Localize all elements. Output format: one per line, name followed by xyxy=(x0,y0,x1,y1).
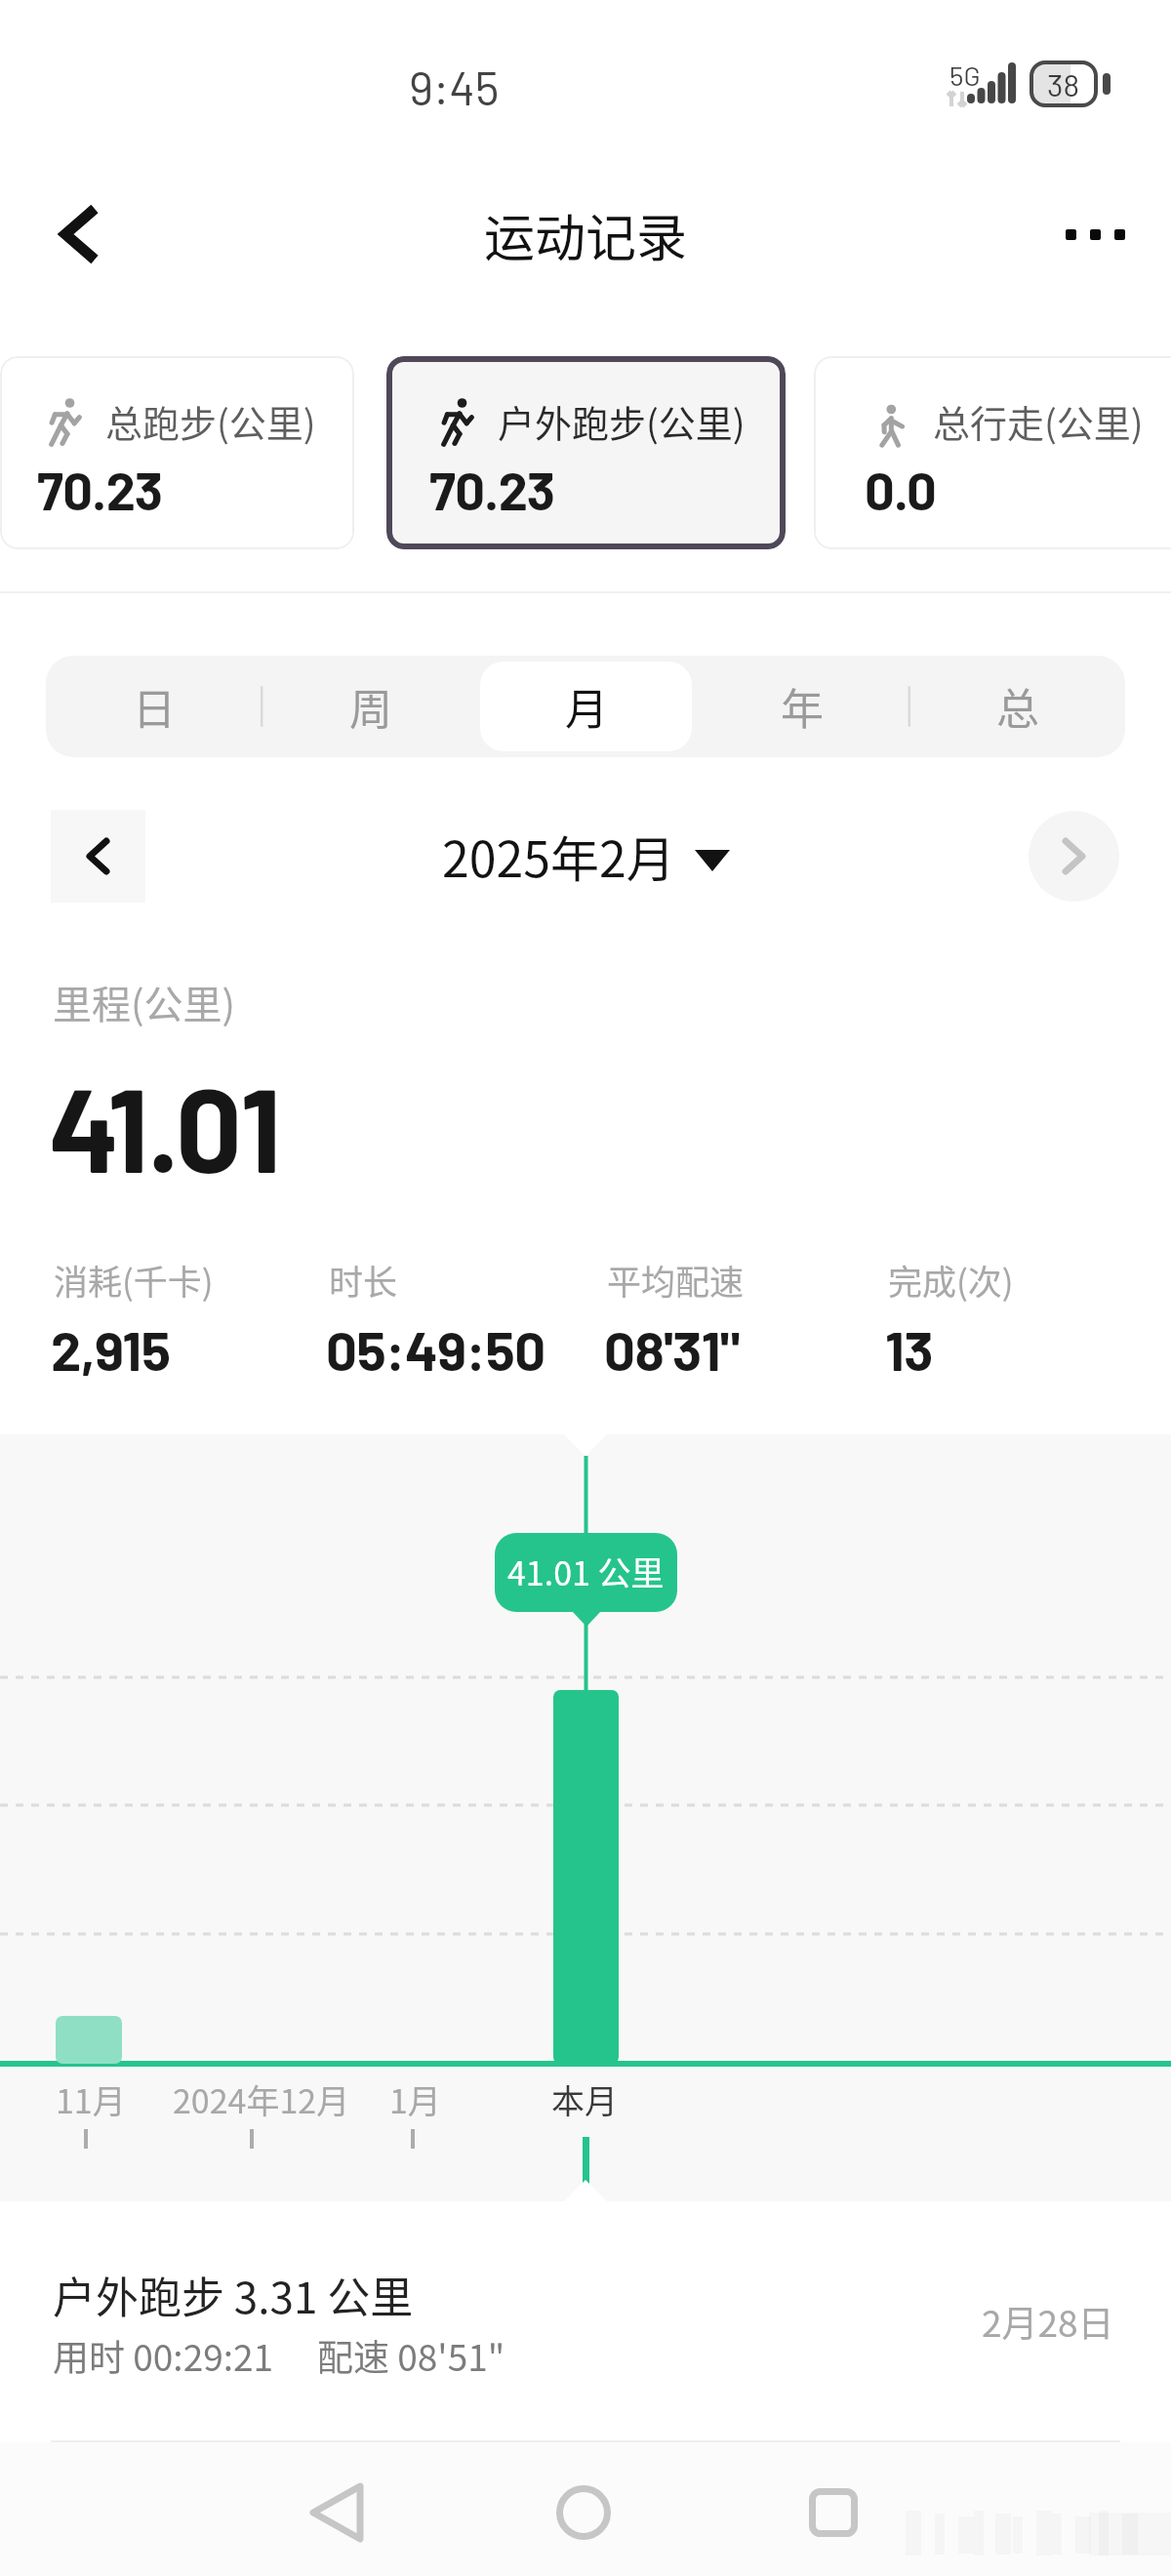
staticText: 2024年12月 xyxy=(173,2075,350,2123)
staticText: 配速 08'51" xyxy=(317,2329,505,2382)
button[interactable]: Previous month xyxy=(51,810,145,903)
staticText: 5G xyxy=(949,59,981,92)
staticText: 2025年2月 xyxy=(442,821,675,891)
staticText: 里程(公里) xyxy=(53,974,236,1030)
staticText: 平均配速 xyxy=(607,1255,745,1305)
button[interactable]: 总跑步(公里) xyxy=(0,356,354,549)
staticText: 总行走(公里) xyxy=(933,394,1144,448)
staticText: 户外跑步(公里) xyxy=(498,394,746,448)
staticText: 38 xyxy=(1047,65,1080,102)
staticText: 41.01 公里 xyxy=(507,1548,665,1595)
button[interactable]: Next month xyxy=(1029,811,1119,902)
staticText: 05:49:50 xyxy=(326,1316,545,1382)
button[interactable]: 月 xyxy=(480,662,692,751)
staticText: 户外跑步 3.31 公里 xyxy=(53,2264,414,2326)
staticText: 2,915 xyxy=(51,1316,171,1382)
staticText: 13 xyxy=(885,1316,934,1382)
button[interactable]: Back xyxy=(278,2454,395,2571)
staticText: 1月 xyxy=(389,2075,441,2123)
staticText: 0.0 xyxy=(865,458,937,521)
staticText: 70.23 xyxy=(429,458,555,521)
button[interactable]: 总行走(公里) xyxy=(814,356,1171,549)
staticText: 11月 xyxy=(56,2075,126,2123)
staticText: 消耗(千卡) xyxy=(54,1255,214,1305)
button[interactable]: 户外跑步(公里) xyxy=(386,356,786,549)
staticText: 2月28日 xyxy=(982,2295,1114,2348)
staticText: 70.23 xyxy=(37,458,163,521)
button[interactable]: More options xyxy=(1050,189,1140,279)
staticText: 用时 00:29:21 xyxy=(53,2329,274,2382)
staticText: 日 xyxy=(133,675,176,738)
staticText: 时长 xyxy=(329,1255,398,1305)
staticText: 完成(次) xyxy=(888,1255,1014,1305)
button[interactable]: Back xyxy=(35,189,125,279)
button[interactable]: 总 xyxy=(911,662,1123,751)
staticText: 总跑步(公里) xyxy=(105,394,316,448)
staticText: 总 xyxy=(996,675,1039,738)
button[interactable]: 年 xyxy=(696,662,908,751)
staticText: 年 xyxy=(781,675,824,738)
staticText: 08'31" xyxy=(604,1316,740,1382)
staticText: 周 xyxy=(349,675,392,738)
button[interactable]: 户外跑步 3.31 公里 xyxy=(0,2201,1171,2442)
button[interactable]: 日 xyxy=(48,662,261,751)
staticText: 9:45 xyxy=(409,59,500,115)
staticText: 本月 xyxy=(551,2075,618,2123)
staticText: 月 xyxy=(565,675,608,738)
button[interactable]: Recent apps xyxy=(775,2454,892,2571)
staticText: 运动记录 xyxy=(484,198,688,271)
button[interactable]: 周 xyxy=(264,662,476,751)
button[interactable]: Home xyxy=(525,2454,642,2571)
staticText: 41.01 xyxy=(49,1056,281,1196)
